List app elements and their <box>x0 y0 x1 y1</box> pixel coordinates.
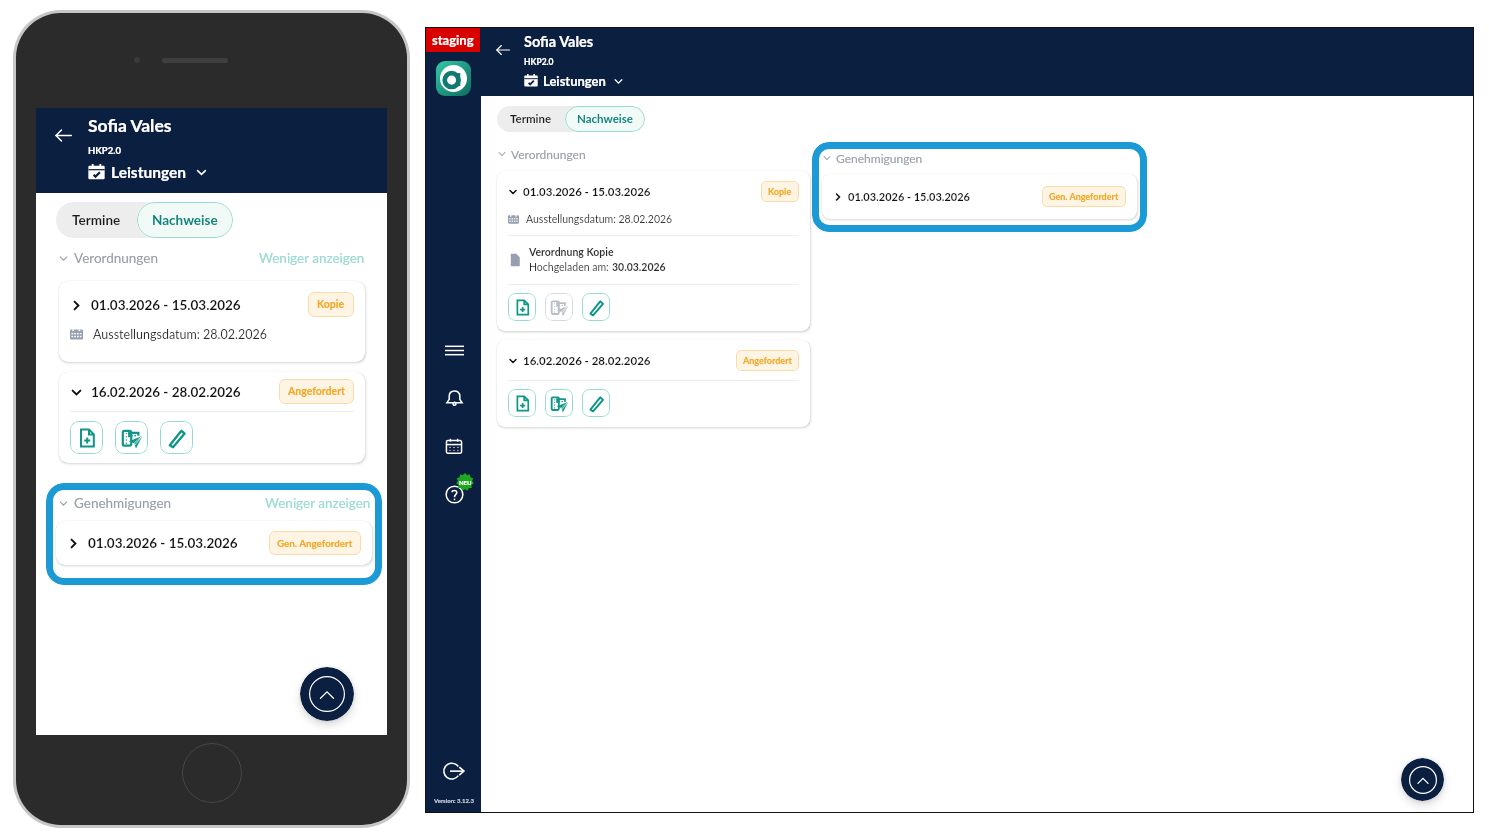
staticText: Gen. Angefordert <box>277 537 353 549</box>
button[interactable]: Scroll to top <box>300 667 354 721</box>
staticText: Sofia Vales <box>88 115 172 136</box>
button[interactable]: Senden <box>115 421 148 454</box>
staticText: 30.03.2026 <box>612 261 666 274</box>
button[interactable]: Senden <box>545 389 573 417</box>
staticText: HKP2.0 <box>88 145 121 156</box>
staticText: Version: 3.12.3 <box>434 797 474 804</box>
staticText: staging <box>432 32 474 48</box>
staticText: Termine <box>72 212 121 228</box>
staticText: Leistungen <box>543 73 606 89</box>
button[interactable]: Back <box>52 124 75 147</box>
staticText: HKP2.0 <box>524 57 554 67</box>
staticText: Hochgeladen am: <box>529 261 612 274</box>
button[interactable]: Bearbeiten <box>582 389 610 417</box>
staticText: Verordnungen <box>74 250 158 266</box>
staticText: Angefordert <box>743 355 792 366</box>
button[interactable]: Senden <box>545 293 573 321</box>
button[interactable]: Verordnungen <box>497 147 586 161</box>
button[interactable]: Scroll to top <box>1401 758 1444 801</box>
button[interactable]: Termine <box>497 106 565 132</box>
staticText: 01.03.2026 - 15.03.2026 <box>88 535 238 551</box>
button[interactable]: Back <box>493 40 513 60</box>
staticText: Termine <box>510 112 552 126</box>
button[interactable]: Termine <box>56 202 137 238</box>
staticText: Weniger anzeigen <box>259 250 365 266</box>
staticText: Nachweise <box>152 212 218 228</box>
button[interactable]: Weniger anzeigen <box>265 495 371 511</box>
button[interactable]: Dokument hinzufügen <box>70 421 103 454</box>
button[interactable]: 16.02.2026 - 28.02.2026 <box>59 372 365 463</box>
staticText: Weniger anzeigen <box>265 495 371 511</box>
button[interactable]: Notifications <box>439 383 469 413</box>
staticText: 01.03.2026 - 15.03.2026 <box>523 185 651 199</box>
staticText: Ausstellungsdatum: 28.02.2026 <box>93 327 267 342</box>
button[interactable]: Genehmigungen <box>58 495 172 511</box>
staticText: Verordnungen <box>511 147 586 161</box>
button[interactable]: Dokument hinzufügen <box>508 389 536 417</box>
staticText: Sofia Vales <box>524 33 594 50</box>
staticText: NEU <box>459 479 472 486</box>
button[interactable]: Nachweise <box>565 106 645 132</box>
button[interactable]: Leistungen <box>524 73 624 89</box>
staticText: Ausstellungsdatum: 28.02.2026 <box>526 213 673 226</box>
staticText: Genehmigungen <box>836 151 923 165</box>
button[interactable]: 01.03.2026 - 15.03.2026 <box>497 171 810 331</box>
staticText: 16.02.2026 - 28.02.2026 <box>91 384 241 400</box>
button[interactable]: Logout <box>438 756 470 788</box>
staticText: Nachweise <box>577 112 633 126</box>
staticText: Genehmigungen <box>74 495 172 511</box>
button[interactable]: Menu <box>439 335 469 365</box>
button[interactable]: 01.03.2026 - 15.03.2026 <box>822 174 1137 219</box>
button[interactable]: Dokument hinzufügen <box>508 293 536 321</box>
button[interactable]: Weniger anzeigen <box>259 250 365 266</box>
staticText: Kopie <box>317 298 345 311</box>
staticText: 01.03.2026 - 15.03.2026 <box>91 297 241 313</box>
button[interactable]: Calendar <box>439 431 469 461</box>
staticText: Angefordert <box>288 385 345 398</box>
button[interactable]: Help <box>439 479 469 509</box>
button[interactable]: Verordnungen <box>58 250 158 266</box>
button[interactable]: Leistungen <box>88 163 208 182</box>
button[interactable]: 01.03.2026 - 15.03.2026 <box>56 521 372 565</box>
button[interactable]: Bearbeiten <box>582 293 610 321</box>
staticText: 01.03.2026 - 15.03.2026 <box>848 190 970 203</box>
button[interactable]: Bearbeiten <box>160 421 193 454</box>
staticText: Verordnung Kopie <box>529 246 614 259</box>
button[interactable]: Nachweise <box>137 202 233 238</box>
staticText: Kopie <box>768 186 792 197</box>
staticText: 16.02.2026 - 28.02.2026 <box>523 354 651 368</box>
button[interactable]: 16.02.2026 - 28.02.2026 <box>497 340 810 427</box>
button[interactable]: Genehmigungen <box>822 151 923 165</box>
staticText: Leistungen <box>111 163 186 182</box>
button[interactable]: 01.03.2026 - 15.03.2026 <box>59 281 365 362</box>
staticText: Gen. Angefordert <box>1049 191 1119 202</box>
